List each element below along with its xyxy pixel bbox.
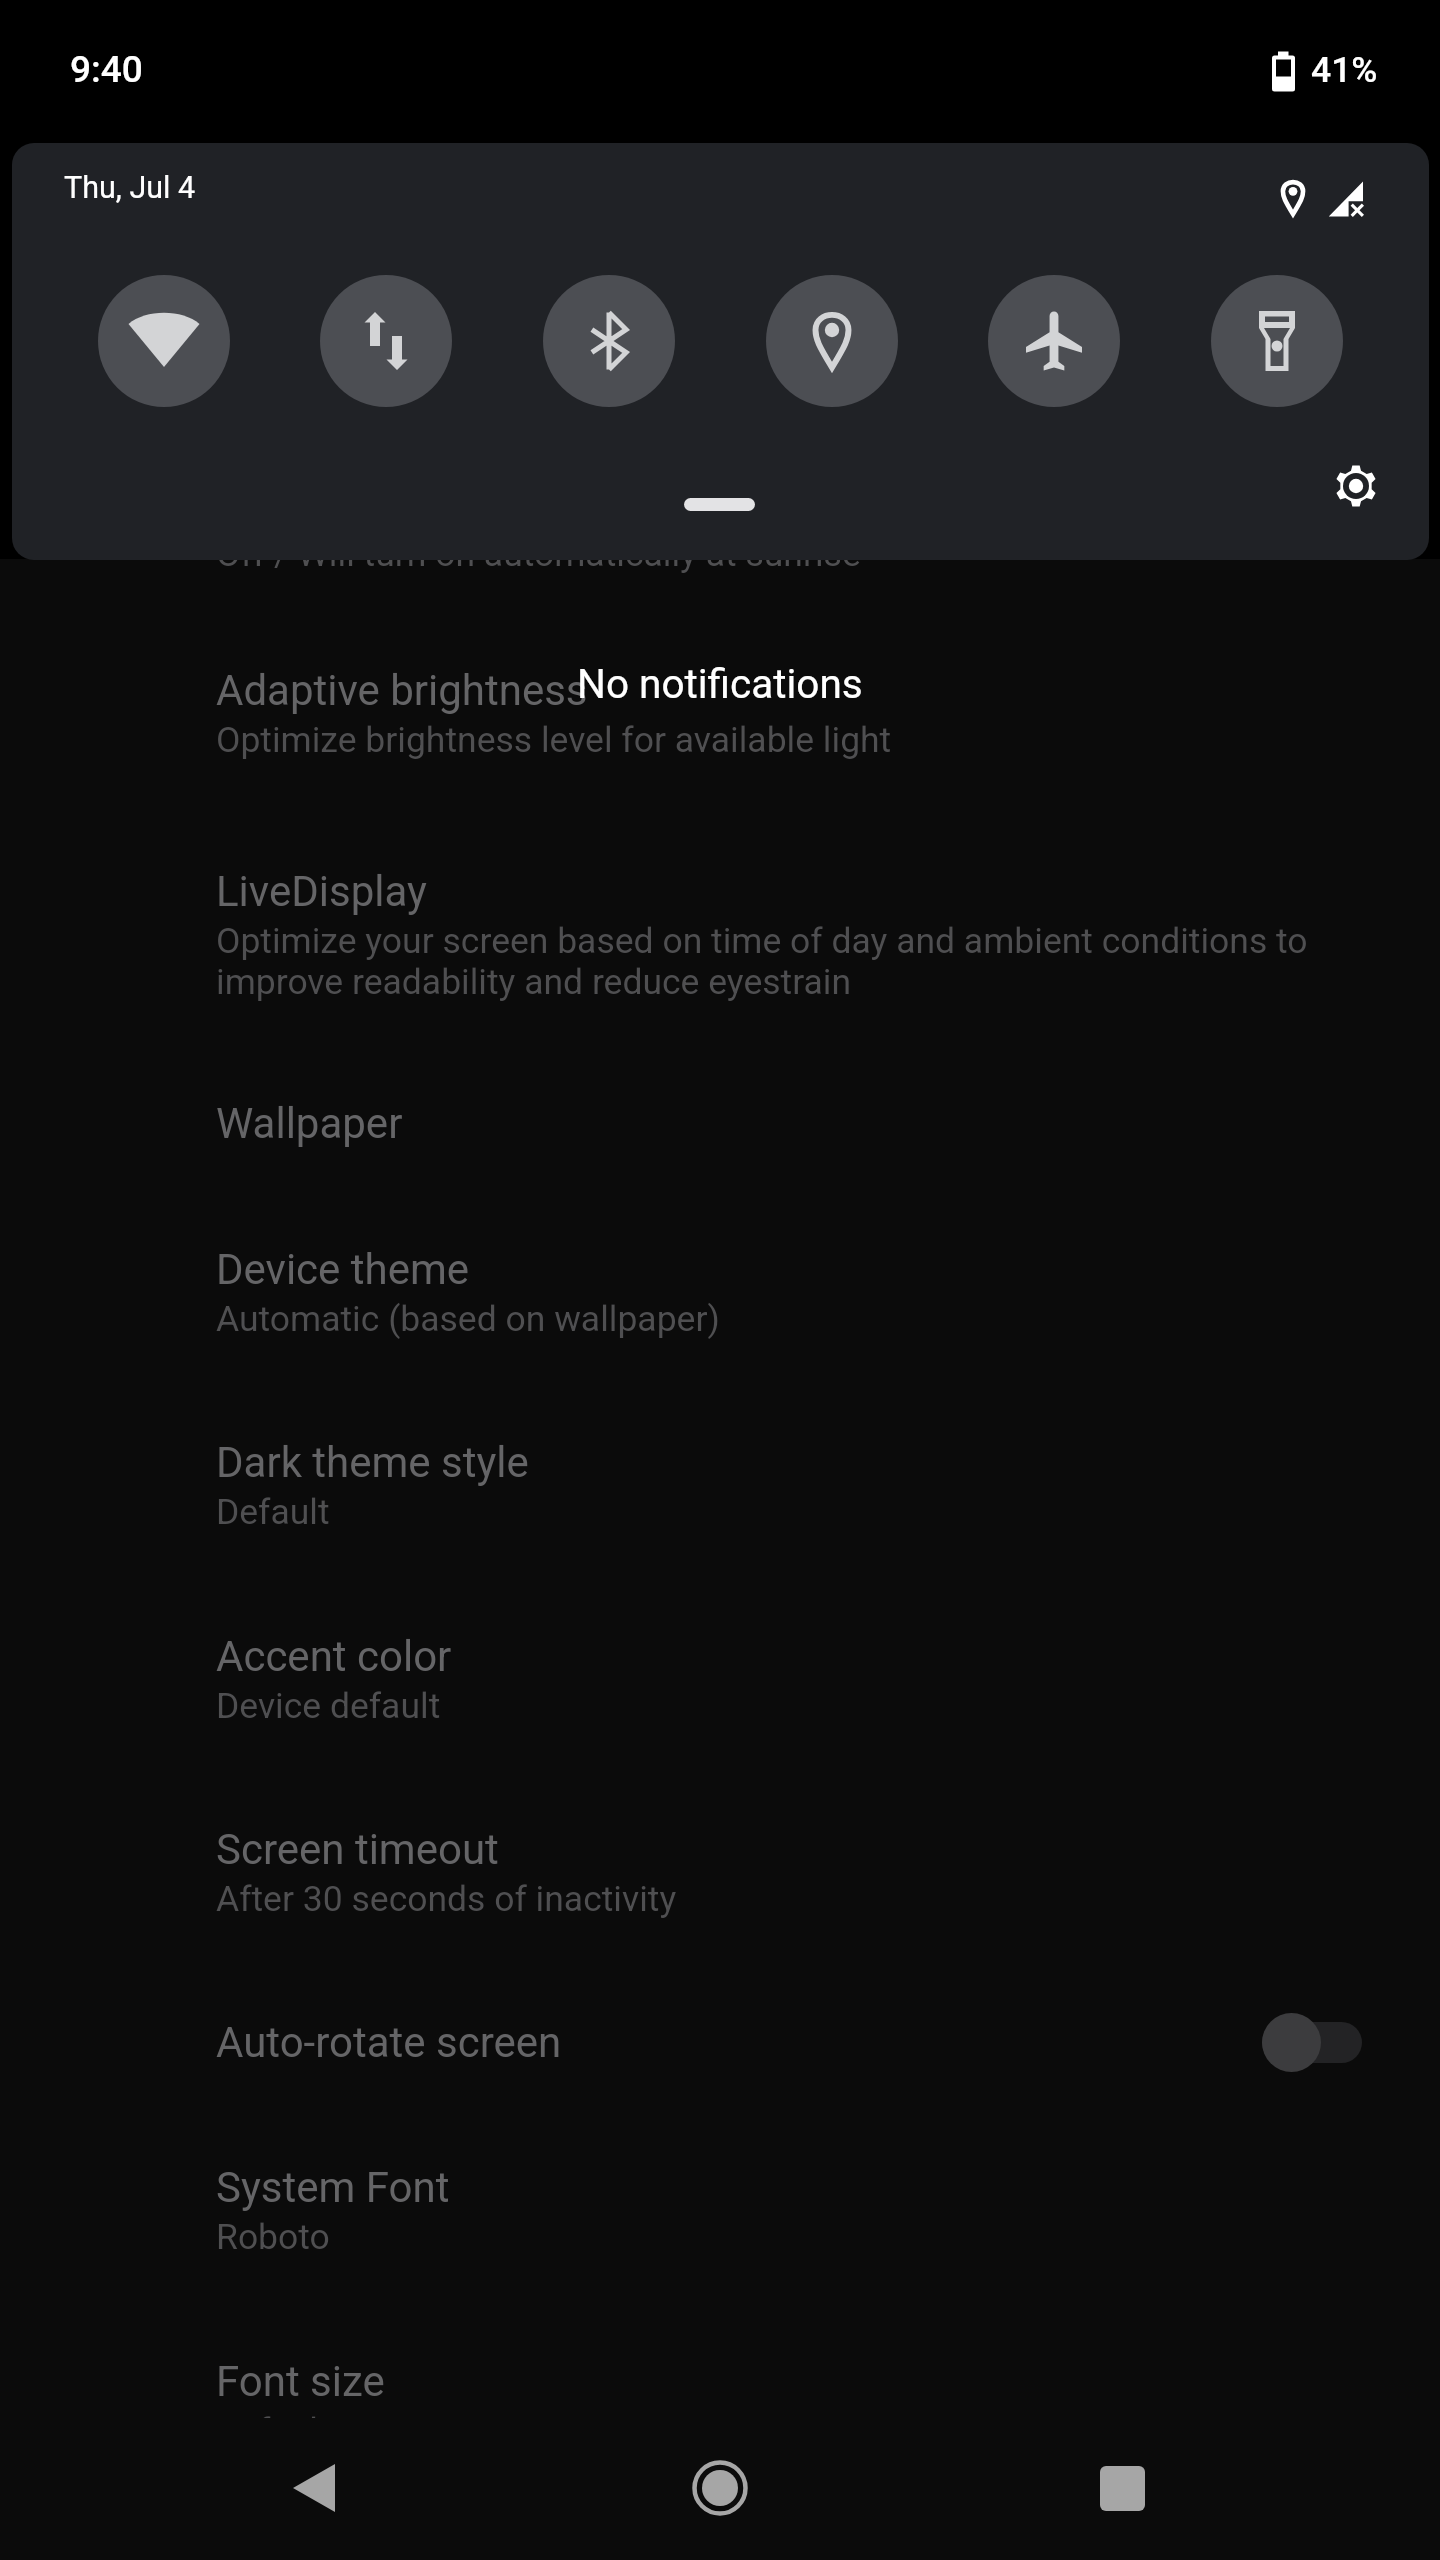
button[interactable]: Accent color (0, 1603, 1440, 1714)
staticText: After 30 seconds of inactivity (216, 1878, 677, 1920)
staticText: Screen timeout (216, 1825, 499, 1874)
button[interactable]: Wi-Fi (98, 275, 230, 407)
button[interactable]: Back (244, 2418, 384, 2558)
button[interactable]: Screen timeout (0, 1796, 1440, 1907)
button[interactable]: Mobile data (320, 275, 452, 407)
button[interactable]: Bluetooth (543, 275, 675, 407)
button[interactable]: Flashlight (1211, 275, 1343, 407)
staticText: LiveDisplay (216, 867, 427, 916)
button[interactable]: Settings (1316, 446, 1396, 526)
button[interactable]: Adaptive brightness (0, 637, 1440, 748)
staticText: System Font (216, 2163, 450, 2212)
staticText: Off / Will turn on automatically at sunr… (216, 533, 861, 575)
button[interactable]: Wallpaper (0, 1070, 1440, 1166)
staticText: Optimize your screen based on time of da… (216, 920, 1308, 962)
staticText: No notifications (577, 660, 863, 707)
staticText: Default (216, 2410, 330, 2418)
staticText: improve readability and reduce eyestrain (216, 961, 852, 1003)
staticText: Optimize brightness level for available … (216, 719, 892, 761)
staticText: Font size (216, 2357, 385, 2406)
button[interactable]: LiveDisplay (0, 838, 1440, 990)
staticText: 9:40 (70, 48, 143, 91)
staticText: Accent color (216, 1632, 452, 1681)
button[interactable]: Airplane mode (988, 275, 1120, 407)
button[interactable]: System Font (0, 2134, 1440, 2245)
button[interactable]: Device theme (0, 1216, 1440, 1327)
staticText: Dark theme style (216, 1438, 529, 1487)
button[interactable]: Auto-rotate screen toggle (1262, 2022, 1362, 2063)
staticText: Thu, Jul 4 (64, 170, 196, 206)
button[interactable]: Recent apps (1052, 2418, 1192, 2558)
staticText: Automatic (based on wallpaper) (216, 1298, 720, 1340)
staticText: Adaptive brightness (216, 666, 588, 715)
other: Location active (1268, 173, 1318, 223)
staticText: Roboto (216, 2216, 330, 2258)
button[interactable]: Auto-rotate screen (0, 1989, 1440, 2085)
staticText: Default (216, 1491, 330, 1533)
staticText: Auto-rotate screen (216, 2018, 562, 2067)
staticText: 41% (1311, 49, 1378, 91)
staticText: Wallpaper (216, 1099, 403, 1148)
button[interactable]: Home (650, 2418, 790, 2558)
staticText: Device default (216, 1685, 441, 1727)
button[interactable]: Dark theme style (0, 1409, 1440, 1520)
other: Battery 41 percent (1270, 48, 1300, 96)
staticText: Device theme (216, 1245, 470, 1294)
other: No signal (1326, 179, 1382, 229)
button[interactable]: Location (766, 275, 898, 407)
button[interactable]: Font size (0, 2328, 1440, 2418)
button[interactable]: Expand quick settings (684, 498, 755, 511)
